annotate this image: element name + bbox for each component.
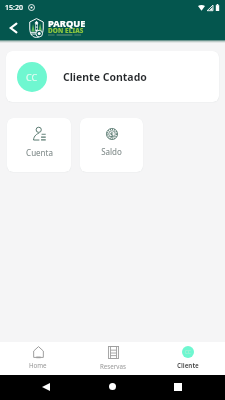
- staticText: Saldo: [101, 146, 122, 157]
- staticText: Cliente Contado: [63, 70, 147, 84]
- button[interactable]: CC: [6, 51, 219, 102]
- button[interactable]: Home: [101, 375, 124, 398]
- button[interactable]: Cuenta: [7, 118, 71, 172]
- button[interactable]: Home: [0, 342, 75, 375]
- staticText: Home: [29, 361, 47, 369]
- button[interactable]: Reservas: [75, 342, 150, 375]
- button[interactable]: CC: [150, 342, 225, 375]
- button[interactable]: Back: [3, 17, 24, 38]
- staticText: $: [110, 130, 114, 139]
- button[interactable]: $: [80, 118, 143, 172]
- staticText: 15:20: [5, 3, 23, 13]
- staticText: Cuenta: [26, 147, 53, 158]
- staticText: DON ELIAS: [48, 26, 84, 35]
- staticText: CC: [26, 71, 38, 83]
- staticText: Reservas: [100, 362, 126, 370]
- staticText: Cliente: [177, 361, 199, 369]
- button[interactable]: Back: [34, 375, 57, 398]
- staticText: CC: [185, 349, 191, 355]
- staticText: PARQUE: [48, 17, 86, 30]
- button[interactable]: Recents: [166, 375, 189, 398]
